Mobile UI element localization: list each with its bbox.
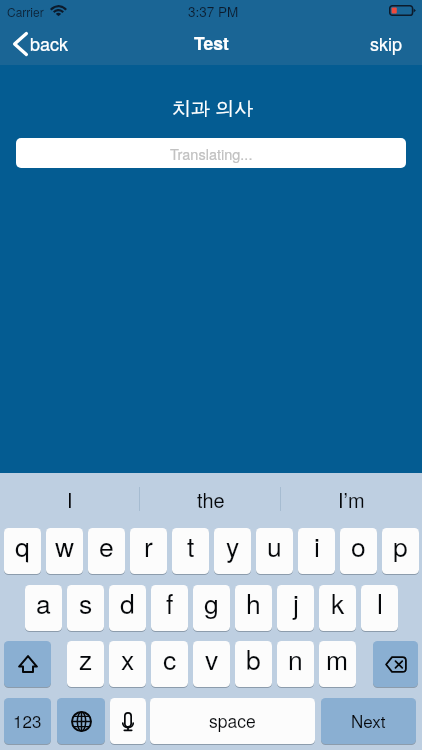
staticText: I’m [338, 485, 365, 514]
staticText: v [205, 641, 219, 678]
button[interactable]: Change keyboard [57, 698, 105, 744]
staticText: e [99, 528, 114, 565]
staticText: g [204, 585, 219, 622]
button[interactable]: y [214, 528, 251, 574]
staticText: w [55, 528, 75, 565]
staticText: x [121, 641, 135, 678]
button[interactable]: w [46, 528, 83, 574]
staticText: m [326, 641, 349, 678]
button[interactable]: b [235, 641, 272, 687]
button[interactable]: n [277, 641, 314, 687]
button[interactable]: o [340, 528, 377, 574]
button[interactable]: Translating... [16, 138, 406, 168]
button[interactable]: v [193, 641, 230, 687]
staticText: a [36, 585, 51, 622]
button[interactable]: m [319, 641, 356, 687]
staticText: f [166, 585, 174, 622]
staticText: t [187, 528, 195, 565]
button[interactable]: l [361, 585, 398, 631]
staticText: z [79, 641, 93, 678]
staticText: Translating... [170, 143, 253, 164]
button[interactable]: the [140, 473, 281, 515]
button[interactable]: k [319, 585, 356, 631]
staticText: back [30, 30, 69, 56]
staticText: k [331, 585, 345, 622]
button[interactable]: q [4, 528, 41, 574]
staticText: h [246, 585, 261, 622]
staticText: y [226, 528, 240, 565]
staticText: u [267, 528, 282, 565]
button[interactable]: t [172, 528, 209, 574]
staticText: space [209, 708, 256, 733]
staticText: b [246, 641, 261, 678]
button[interactable]: f [151, 585, 188, 631]
staticText: n [288, 641, 303, 678]
staticText: 123 [13, 708, 42, 732]
button[interactable]: Backspace [373, 641, 418, 687]
staticText: 치과 의사 [172, 93, 254, 120]
staticText: p [393, 528, 408, 565]
button[interactable]: u [256, 528, 293, 574]
button[interactable]: space [150, 698, 315, 744]
staticText: s [79, 585, 93, 622]
button[interactable]: j [277, 585, 314, 631]
button[interactable]: d [109, 585, 146, 631]
staticText: Test [194, 30, 229, 55]
staticText: l [377, 585, 383, 622]
button[interactable]: c [151, 641, 188, 687]
button[interactable]: I’m [281, 473, 422, 515]
staticText: the [197, 485, 225, 514]
staticText: 3:37 PM [188, 2, 239, 21]
button[interactable]: Shift [4, 641, 51, 687]
staticText: Carrier [7, 3, 44, 20]
button[interactable]: s [67, 585, 104, 631]
staticText: r [144, 528, 153, 565]
button[interactable]: Dictate [110, 698, 146, 744]
staticText: i [314, 528, 320, 565]
button[interactable]: x [109, 641, 146, 687]
button[interactable]: z [67, 641, 104, 687]
button[interactable]: p [382, 528, 419, 574]
staticText: j [293, 585, 299, 622]
staticText: c [163, 641, 177, 678]
button[interactable]: I [0, 473, 140, 515]
staticText: skip [370, 30, 403, 56]
button[interactable]: i [298, 528, 335, 574]
button[interactable]: back [0, 20, 79, 65]
button[interactable]: r [130, 528, 167, 574]
button[interactable]: Next [321, 698, 416, 744]
button[interactable]: 123 [4, 698, 51, 744]
staticText: o [351, 528, 366, 565]
button[interactable]: e [88, 528, 125, 574]
staticText: I [67, 485, 73, 514]
button[interactable]: skip [358, 24, 422, 62]
button[interactable]: h [235, 585, 272, 631]
staticText: d [120, 585, 135, 622]
staticText: Next [351, 708, 386, 732]
button[interactable]: a [25, 585, 62, 631]
button[interactable]: g [193, 585, 230, 631]
staticText: q [15, 528, 30, 565]
